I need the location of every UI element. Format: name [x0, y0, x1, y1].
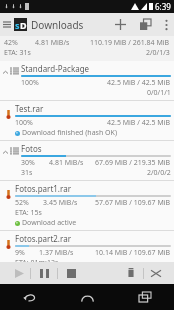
- staticText: Fotos: [21, 143, 42, 154]
- button[interactable]: More options: [158, 13, 174, 36]
- staticText: 67.69 MiB / 219.35 MiB: [95, 158, 171, 168]
- staticText: 57.67 MiB / 109.67 MiB: [95, 198, 171, 208]
- button[interactable]: Standard-Package: [0, 61, 174, 101]
- staticText: 6:39: [155, 1, 171, 12]
- staticText: Download finished (hash OK): [22, 128, 117, 138]
- staticText: 42.5 MiB / 42.5 MiB: [107, 118, 171, 128]
- staticText: Standard-Package: [21, 63, 90, 74]
- staticText: Fotos.part1.rar: [15, 183, 71, 194]
- staticText: ETA: 01m:12s: [15, 258, 59, 262]
- staticText: 30%: [21, 158, 35, 168]
- staticText: 42%: [4, 38, 18, 48]
- button[interactable]: Add download: [108, 13, 132, 36]
- button[interactable]: Start: [8, 262, 30, 284]
- staticText: 110.19 MiB / 261.84 MiB: [90, 38, 170, 48]
- staticText: s: [15, 19, 20, 31]
- staticText: ETA: 31s: [4, 48, 31, 58]
- staticText: D: [20, 19, 27, 31]
- button[interactable]: Clipboard monitor: [132, 13, 158, 36]
- staticText: 31s: [21, 168, 33, 178]
- staticText: 4.81 MiB/s: [49, 158, 84, 168]
- staticText: ETA: 15s: [15, 208, 42, 218]
- staticText: 100%: [15, 118, 33, 128]
- staticText: 9%: [15, 248, 25, 258]
- button[interactable]: Delete: [119, 262, 143, 284]
- button[interactable]: Home: [58, 284, 116, 310]
- button[interactable]: Test.rar: [0, 101, 174, 141]
- staticText: 52%: [15, 198, 29, 208]
- button[interactable]: Fotos.part1.rar: [0, 181, 174, 231]
- staticText: 1.37 MiB/s: [39, 248, 74, 258]
- staticText: 2/0/0/2: [147, 168, 171, 178]
- button[interactable]: Fotos.part2.rar: [0, 231, 174, 262]
- staticText: 2/0/1/3: [146, 48, 170, 58]
- staticText: 3.45 MiB/s: [43, 198, 78, 208]
- button[interactable]: Fotos: [0, 141, 174, 181]
- staticText: Fotos.part2.rar: [15, 233, 71, 244]
- button[interactable]: Pause: [31, 262, 57, 284]
- staticText: 10.14 MiB / 109.67 MiB: [95, 248, 171, 258]
- button[interactable]: Shuffle: [144, 262, 168, 284]
- staticText: 42.5 MiB / 42.5 MiB: [107, 78, 171, 88]
- button[interactable]: Recent apps: [116, 284, 174, 310]
- staticText: 0/0/1/1: [147, 88, 171, 98]
- button[interactable]: Back: [0, 284, 58, 310]
- staticText: Downloads: [31, 18, 84, 32]
- staticText: 4.81 MiB/s: [35, 38, 70, 48]
- staticText: Download active: [22, 218, 77, 228]
- button[interactable]: Navigation drawer: [0, 13, 14, 36]
- staticText: 100%: [21, 78, 39, 88]
- staticText: Test.rar: [15, 103, 44, 114]
- button[interactable]: Stop: [58, 262, 84, 284]
